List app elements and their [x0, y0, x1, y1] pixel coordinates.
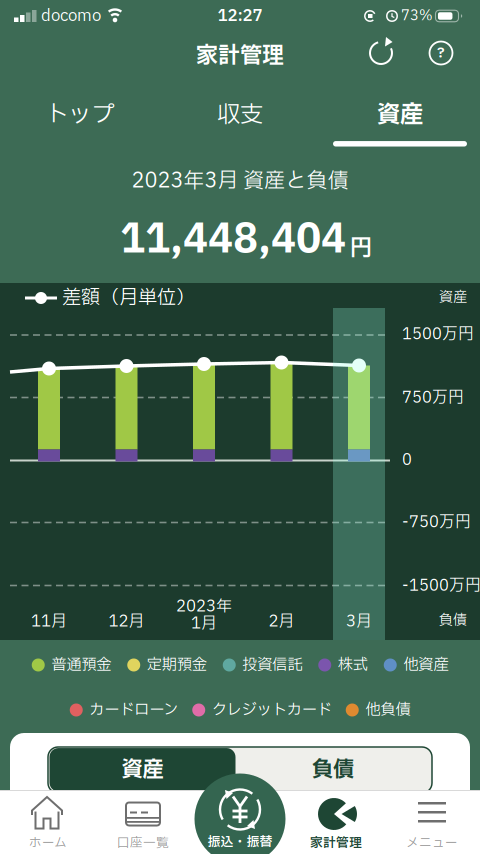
staticText: 資産 [121, 754, 163, 786]
staticText: 株式 [338, 653, 368, 676]
staticText: 差額（月単位） [62, 283, 195, 312]
staticText: 12月 [108, 609, 144, 633]
button[interactable]: 家計管理 [296, 790, 376, 850]
staticText: メニュー [406, 833, 458, 852]
button[interactable]: 収支 [160, 90, 320, 140]
staticText: -1500万円 [402, 574, 480, 598]
staticText: 12:27 [217, 4, 262, 28]
staticText: 73% [401, 5, 433, 26]
staticText: 2023年3月 資産と負債 [131, 165, 348, 196]
button[interactable]: 資産 [320, 90, 480, 140]
staticText: 資産 [377, 97, 423, 132]
staticText: 1月 [191, 611, 217, 635]
button[interactable]: ホーム [18, 790, 78, 850]
staticText: 11月 [31, 609, 67, 633]
staticText: 2月 [268, 609, 294, 633]
button[interactable]: トップ [0, 90, 160, 140]
staticText: 収支 [217, 97, 263, 132]
staticText: 3月 [346, 609, 372, 633]
button[interactable]: 資産 [49, 748, 235, 791]
staticText: 定期預金 [147, 653, 207, 676]
staticText: 投資信託 [242, 653, 302, 676]
staticText: -750万円 [402, 511, 471, 534]
staticText: 他負債 [365, 698, 410, 721]
staticText: 750万円 [402, 386, 464, 410]
staticText: 1500万円 [402, 323, 474, 346]
staticText: 口座一覧 [117, 833, 169, 852]
staticText: 資産 [439, 287, 467, 308]
staticText: 負債 [439, 610, 467, 631]
staticText: 円 [350, 232, 372, 265]
staticText: docomo [41, 4, 101, 28]
staticText: 負債 [312, 754, 354, 786]
button[interactable]: メニュー [402, 790, 462, 850]
staticText: 家計管理 [196, 39, 284, 72]
staticText: 普通預金 [51, 653, 111, 676]
staticText: 振込・振替 [207, 832, 272, 851]
button[interactable]: ? [421, 33, 461, 73]
staticText: 11,448,404 [120, 210, 346, 270]
staticText: クレジットカード [212, 698, 332, 721]
staticText: トップ [45, 97, 114, 132]
staticText: カードローン [89, 698, 178, 721]
button[interactable]: 負債 [240, 748, 426, 791]
staticText: 2023年 [176, 594, 232, 618]
staticText: ホーム [29, 833, 67, 852]
staticText: 家計管理 [310, 833, 362, 852]
staticText: ? [437, 42, 445, 64]
staticText: 0 [402, 448, 412, 472]
button[interactable]: 口座一覧 [103, 790, 183, 850]
button[interactable] [361, 33, 401, 73]
staticText: 他資産 [403, 653, 448, 676]
button[interactable]: 振込・振替 [194, 773, 285, 854]
